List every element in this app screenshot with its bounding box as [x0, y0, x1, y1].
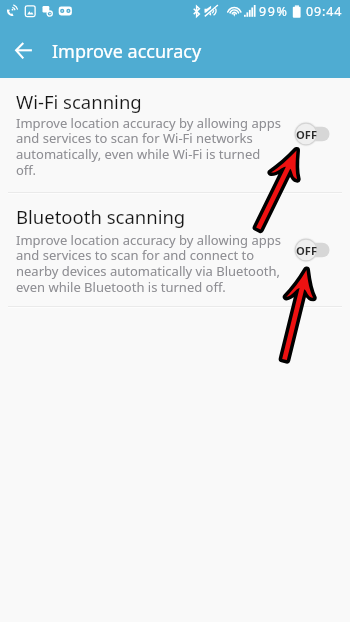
staticText: Improve location accuracy by allowing ap… — [16, 231, 282, 296]
staticText: Improve location accuracy by allowing ap… — [16, 114, 282, 179]
button[interactable]: Bluetooth scanning — [0, 0, 350, 622]
staticText: 09:44 — [306, 3, 343, 20]
staticText: Bluetooth scanning — [16, 204, 282, 229]
staticText: Improve accuracy — [52, 39, 202, 64]
button[interactable]: Navigate up — [0, 22, 48, 70]
staticText: 99% — [259, 3, 289, 20]
button[interactable]: Wi-Fi scanning — [0, 0, 350, 622]
button[interactable]: Toggle, off — [292, 118, 338, 150]
staticText: Wi-Fi scanning — [16, 89, 282, 114]
button[interactable]: Toggle, off — [292, 234, 338, 266]
staticText: OFF — [296, 243, 318, 258]
staticText: OFF — [296, 127, 318, 142]
